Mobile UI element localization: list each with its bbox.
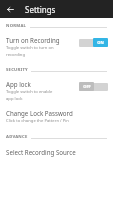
staticText: ADVANCE	[6, 134, 28, 140]
staticText: Turn on Recording	[6, 36, 60, 44]
staticText: Toggle switch to turn on recording	[6, 45, 54, 57]
button[interactable]: Turn on Recording	[0, 33, 113, 60]
staticText: Toggle switch to enable app lock	[6, 89, 53, 101]
staticText: Settings	[25, 4, 56, 15]
staticText: Change Lock Password	[6, 109, 73, 117]
staticText: App lock	[6, 80, 31, 88]
staticText: Select Recording Source	[6, 148, 76, 156]
button[interactable]: Change Lock Password	[0, 106, 113, 127]
button[interactable]: Switch on	[79, 38, 108, 47]
staticText: SECURITY	[6, 67, 28, 73]
staticText: ON	[97, 40, 104, 45]
button[interactable]: App lock	[0, 77, 113, 104]
staticText: Click to change the Pattern / Pin	[6, 118, 69, 124]
button[interactable]: Switch off	[79, 82, 108, 91]
staticText: NORMAL	[6, 23, 27, 29]
button[interactable]: Back	[4, 3, 17, 16]
button[interactable]: Select Recording Source	[0, 145, 113, 159]
staticText: OFF	[83, 84, 91, 89]
